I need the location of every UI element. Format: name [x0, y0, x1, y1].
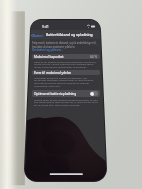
- button[interactable]: Evne til maksimal ydelse: [34, 71, 98, 75]
- button[interactable]: Maksimal kapacitet: [34, 55, 98, 59]
- staticText: Optimeret batteriopladning: [34, 92, 77, 96]
- staticText: Batteri: [33, 33, 44, 37]
- staticText: 64 %: [90, 55, 98, 59]
- staticText: Indbygget dynamisk styring af ydeevnen, …: [34, 76, 99, 88]
- staticText: Dette er en måling af batteriets kapacit…: [34, 60, 99, 69]
- button[interactable]: Om batteri og ydeevne...: [32, 48, 64, 52]
- button[interactable]: Batteri: [30, 32, 45, 38]
- staticText: Følg med i batteriets tilstand, og få an…: [32, 41, 100, 48]
- button[interactable]: Optimeret batteriopladning: [34, 91, 98, 96]
- staticText: Batteritilstand og opladning: [46, 32, 93, 37]
- staticText: Maksimal kapacitet: [34, 55, 64, 59]
- staticText: iPhone lærer af dine daglige opladningsr…: [34, 98, 99, 107]
- staticText: 9:41: [42, 24, 49, 29]
- button[interactable]: Optimeret batteriopladning: [90, 91, 98, 96]
- staticText: Evne til maksimal ydelse: [34, 71, 72, 75]
